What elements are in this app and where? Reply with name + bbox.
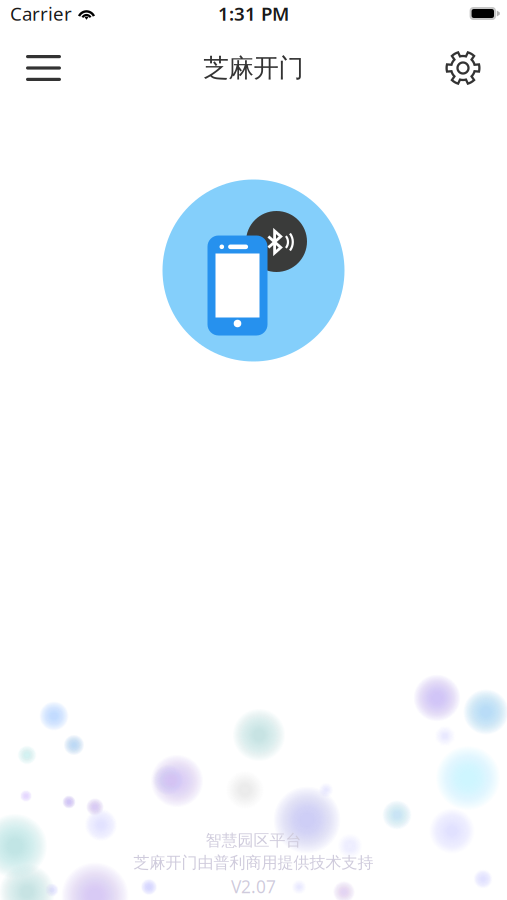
staticText: 智慧园区平台: [205, 831, 301, 850]
staticText: 1:31 PM: [218, 1, 289, 26]
button[interactable]: Menu: [21, 46, 65, 90]
staticText: V2.07: [231, 875, 276, 898]
staticText: Carrier: [10, 1, 72, 26]
staticText: 芝麻开门由普利商用提供技术支持: [133, 853, 373, 872]
staticText: 芝麻开门: [203, 52, 303, 83]
button[interactable]: Settings: [443, 48, 483, 88]
